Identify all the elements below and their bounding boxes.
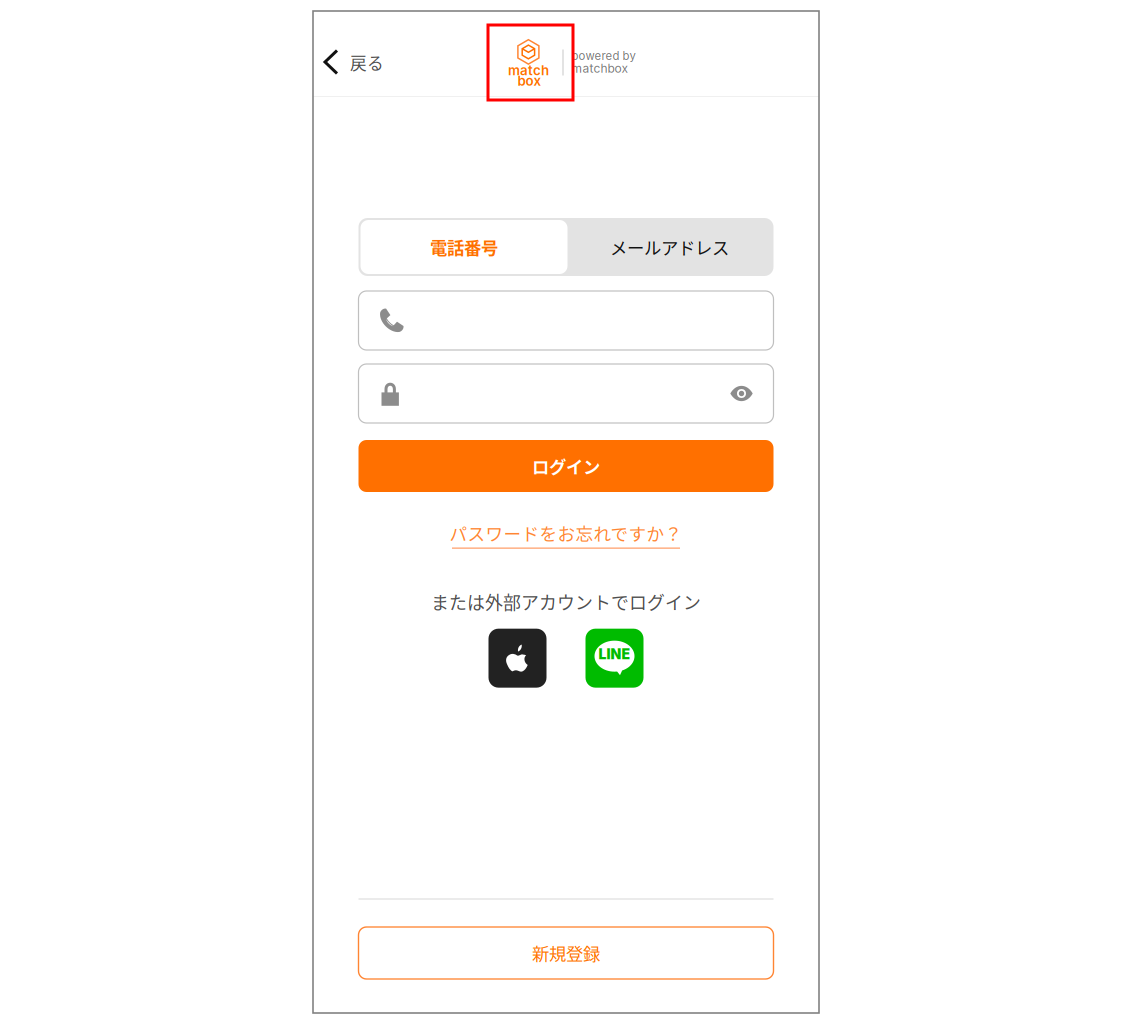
staticText: または外部アカウントでログイン bbox=[431, 589, 701, 615]
staticText: メールアドレス bbox=[610, 234, 729, 260]
staticText: ログイン bbox=[532, 453, 600, 479]
staticText: LINE bbox=[598, 646, 630, 663]
button[interactable]: 戻る bbox=[313, 11, 398, 96]
staticText: 電話番号 bbox=[430, 234, 498, 260]
button[interactable]: 新規登録 bbox=[358, 927, 773, 979]
button[interactable]: メールアドレス bbox=[567, 220, 771, 274]
button[interactable]: 電話番号 bbox=[360, 220, 567, 274]
staticText: box bbox=[517, 73, 541, 89]
button[interactable]: パスワードをお忘れですか？ bbox=[449, 520, 682, 549]
staticText: 新規登録 bbox=[532, 940, 600, 966]
button[interactable]: Sign in with LINE bbox=[585, 629, 643, 688]
staticText: powered by bbox=[572, 49, 636, 63]
staticText: 戻る bbox=[350, 50, 384, 74]
button[interactable]: Sign in with Apple bbox=[488, 629, 546, 688]
staticText: matchbox bbox=[572, 61, 629, 76]
staticText: match bbox=[508, 62, 549, 78]
staticText: パスワードをお忘れですか？ bbox=[449, 520, 682, 545]
button[interactable]: ログイン bbox=[358, 440, 773, 492]
